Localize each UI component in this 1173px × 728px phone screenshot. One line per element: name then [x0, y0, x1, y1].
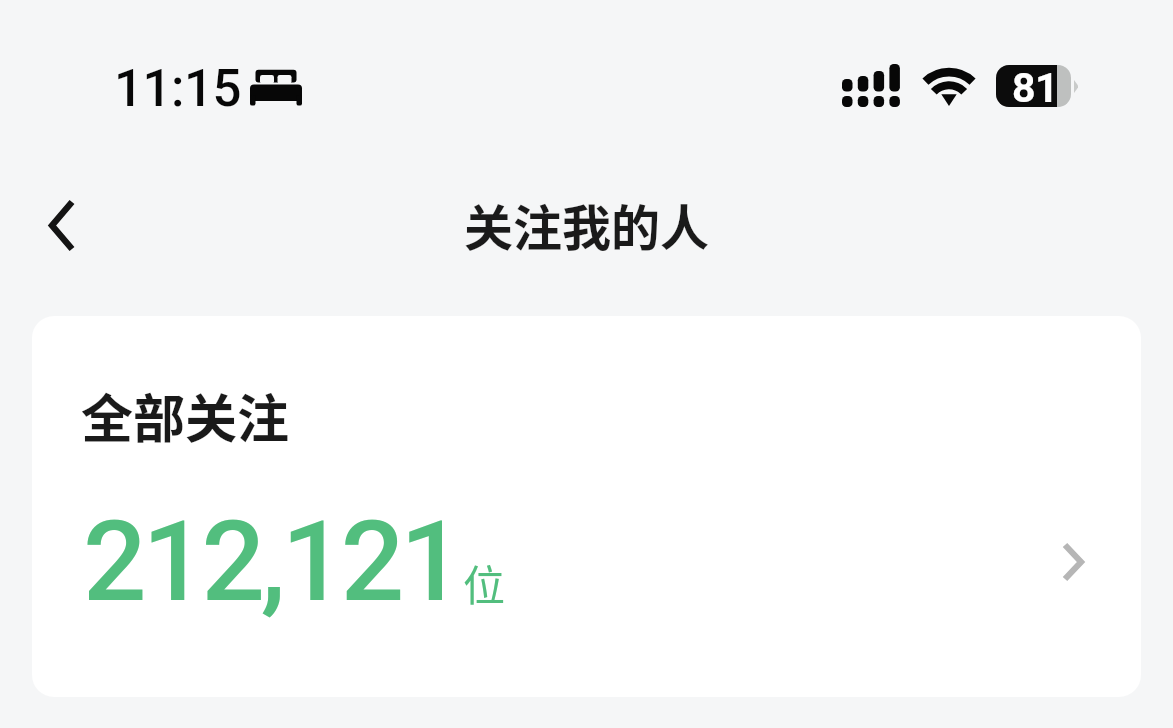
- staticText: 212,121: [83, 496, 460, 627]
- staticText: 81: [1012, 65, 1059, 106]
- staticText: 11:15: [114, 59, 241, 119]
- button[interactable]: View all followers: [1034, 522, 1114, 602]
- staticText: 位: [463, 552, 506, 613]
- button[interactable]: Back: [22, 185, 102, 265]
- button[interactable]: 全部关注: [32, 316, 1141, 697]
- staticText: 全部关注: [81, 378, 290, 453]
- staticText: 关注我的人: [0, 189, 1173, 260]
